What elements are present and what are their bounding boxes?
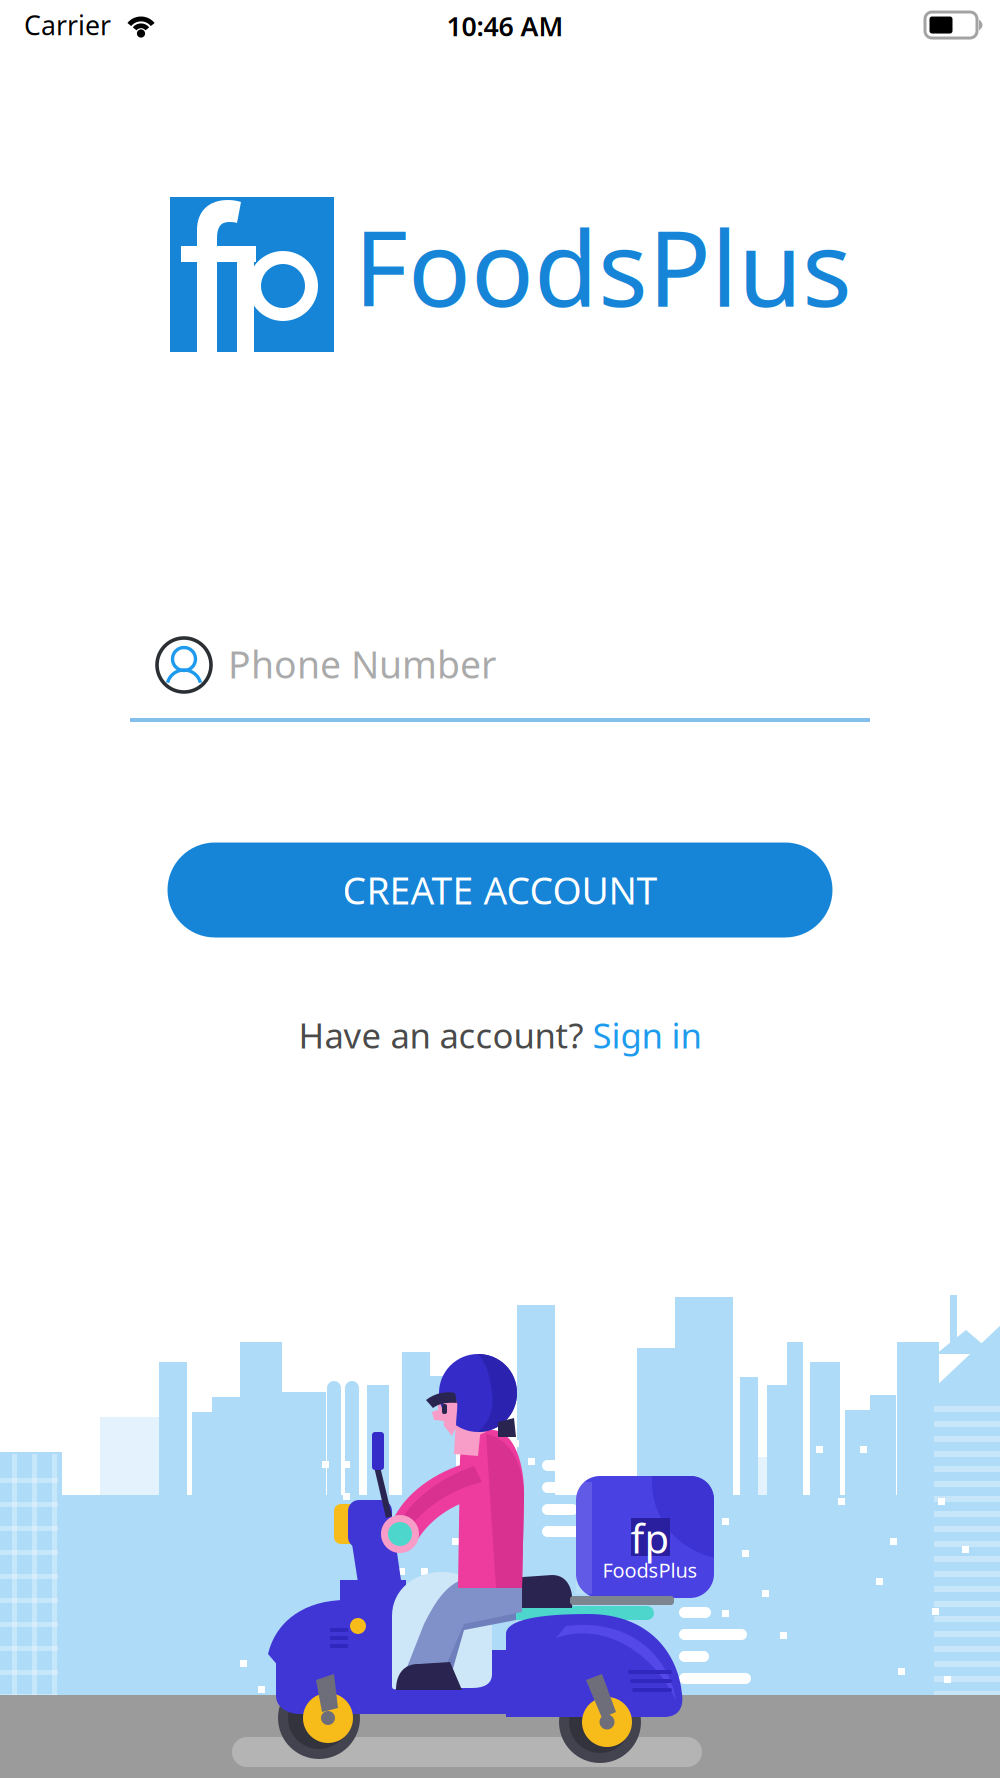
staticText: CREATE ACCOUNT	[342, 865, 657, 915]
staticText: 10:46 AM	[446, 8, 563, 44]
button[interactable]: CREATE ACCOUNT	[167, 842, 832, 937]
staticText: FoodsPlus	[354, 197, 852, 335]
staticText: Phone Number	[228, 639, 496, 689]
staticText: Sign in	[592, 1012, 701, 1058]
button[interactable]: Have an account?	[286, 1004, 713, 1066]
staticText: fp	[630, 1511, 669, 1564]
staticText: FoodsPlus	[602, 1557, 697, 1583]
staticText: Carrier	[24, 7, 111, 43]
staticText: Have an account?	[298, 1012, 592, 1058]
